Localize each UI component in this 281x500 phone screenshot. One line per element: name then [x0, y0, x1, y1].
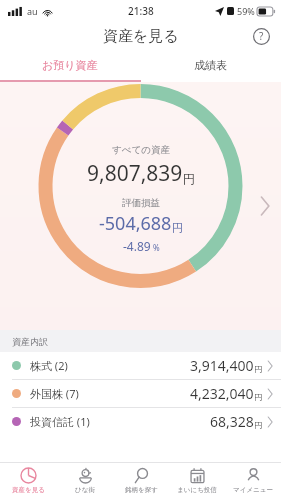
staticText: 円	[183, 171, 195, 186]
staticText: すべての資産	[112, 144, 170, 156]
staticText: 円	[254, 392, 262, 402]
staticText: 59%	[237, 5, 255, 17]
button[interactable]: まいにち投信	[169, 463, 225, 500]
button[interactable]: Next	[253, 194, 277, 218]
button[interactable]: 投資信託 (1)	[0, 408, 281, 435]
staticText: 成績表	[194, 58, 227, 72]
staticText: 21:38	[128, 4, 154, 18]
staticText: 投資信託 (1)	[30, 414, 90, 429]
staticText: 68,328	[210, 412, 254, 431]
button[interactable]: Help	[249, 24, 273, 48]
button[interactable]: 成績表	[140, 50, 281, 80]
staticText: ?	[259, 29, 264, 43]
button[interactable]: 銘柄を探す	[113, 463, 169, 500]
staticText: お預り資産	[42, 58, 98, 72]
staticText: 資産を見る	[12, 486, 45, 494]
staticText: 株式 (2)	[30, 358, 68, 373]
button[interactable]: マイメニュー	[225, 463, 281, 500]
staticText: au	[27, 5, 38, 17]
staticText: マイメニュー	[233, 486, 273, 494]
button[interactable]: 外国株 (7)	[0, 380, 281, 407]
staticText: 円	[254, 420, 262, 430]
staticText: -504,688	[99, 211, 172, 236]
staticText: 3,914,400	[190, 356, 254, 375]
staticText: 4,232,040	[190, 384, 254, 403]
staticText: 資産を見る	[103, 27, 179, 46]
staticText: %	[151, 242, 160, 253]
button[interactable]: 株式 (2)	[0, 352, 281, 379]
button[interactable]: 資産を見る	[0, 463, 57, 500]
staticText: 資産内訳	[12, 336, 48, 347]
button[interactable]: お預り資産	[0, 50, 140, 80]
staticText: -4.89	[123, 238, 151, 254]
staticText: 円	[172, 221, 183, 235]
staticText: 銘柄を探す	[125, 486, 158, 494]
staticText: 外国株 (7)	[30, 386, 79, 401]
staticText: 9,807,839	[87, 159, 183, 188]
staticText: まいにち投信	[177, 486, 217, 494]
staticText: 円	[254, 364, 262, 374]
staticText: 評価損益	[122, 197, 160, 209]
staticText: ひな街	[75, 486, 95, 494]
button[interactable]: ひな街	[57, 463, 113, 500]
